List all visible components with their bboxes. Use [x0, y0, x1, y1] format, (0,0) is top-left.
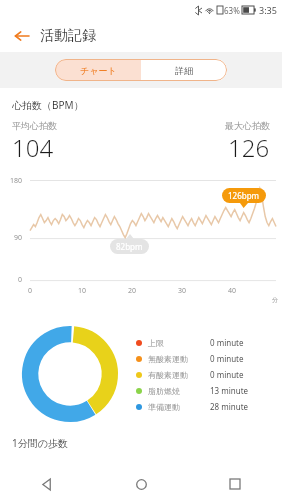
- staticText: 10: [78, 286, 87, 296]
- staticText: 脂肪燃焼: [148, 386, 210, 396]
- staticText: 3:35: [259, 4, 277, 16]
- staticText: 心拍数（BPM）: [12, 98, 84, 112]
- staticText: 0 minute: [210, 337, 244, 348]
- staticText: 28 minute: [210, 401, 249, 412]
- staticText: 126bpm: [228, 190, 260, 201]
- staticText: 20: [128, 286, 137, 296]
- staticText: 準備運動: [148, 402, 210, 412]
- staticText: 活動記録: [40, 27, 96, 45]
- staticText: 13 minute: [210, 385, 249, 396]
- staticText: 40: [228, 286, 237, 296]
- staticText: 90: [14, 233, 23, 243]
- staticText: 最大心拍数: [225, 120, 270, 131]
- staticText: 82bpm: [116, 241, 143, 252]
- staticText: 63%: [224, 5, 240, 16]
- staticText: 上限: [148, 338, 210, 348]
- staticText: チャート: [80, 65, 117, 76]
- staticText: 30: [178, 286, 187, 296]
- staticText: 分: [272, 296, 278, 304]
- staticText: 104: [12, 131, 54, 164]
- staticText: 無酸素運動: [148, 354, 210, 364]
- staticText: 1分間の歩数: [12, 436, 68, 450]
- button[interactable]: Back: [0, 467, 94, 501]
- staticText: 0: [28, 286, 33, 296]
- staticText: 詳細: [175, 65, 193, 76]
- button[interactable]: Back: [8, 23, 34, 49]
- staticText: 有酸素運動: [148, 370, 210, 380]
- staticText: 126: [228, 131, 270, 164]
- staticText: 平均心拍数: [12, 120, 57, 131]
- button[interactable]: Home: [94, 467, 188, 501]
- staticText: 180: [10, 176, 23, 186]
- staticText: 0 minute: [210, 353, 244, 364]
- staticText: 0: [18, 275, 23, 285]
- button[interactable]: 詳細: [141, 59, 227, 81]
- button[interactable]: チャート: [55, 59, 141, 81]
- staticText: 0 minute: [210, 369, 244, 380]
- button[interactable]: Recent apps: [188, 467, 282, 501]
